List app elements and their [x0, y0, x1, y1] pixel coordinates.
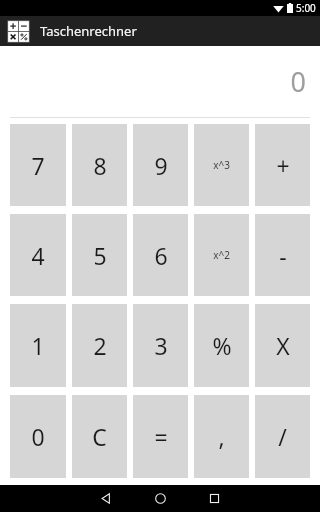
staticText: 0 — [31, 421, 45, 452]
staticText: - — [279, 240, 287, 271]
button[interactable]: 0 — [12, 46, 306, 117]
button[interactable]: 1 — [10, 304, 66, 387]
button[interactable]: = — [133, 395, 188, 478]
staticText: 9 — [154, 150, 168, 181]
button[interactable]: X — [255, 304, 310, 387]
button[interactable]: 8 — [72, 124, 127, 206]
button[interactable]: Home — [133, 485, 187, 512]
button[interactable]: - — [255, 214, 310, 296]
button[interactable]: x^2 — [194, 214, 249, 296]
staticText: X — [276, 330, 290, 361]
staticText: 2 — [93, 330, 107, 361]
staticText: , — [218, 421, 225, 452]
button[interactable]: % — [194, 304, 249, 387]
staticText: 0 — [290, 63, 306, 100]
staticText: 4 — [31, 240, 45, 271]
button[interactable]: Taschenrechner app icon — [6, 19, 30, 43]
button[interactable]: 7 — [10, 124, 66, 206]
staticText: 6 — [154, 240, 168, 271]
button[interactable]: x^3 — [194, 124, 249, 206]
button[interactable]: + — [255, 124, 310, 206]
button[interactable]: 6 — [133, 214, 188, 296]
staticText: x^3 — [213, 158, 230, 172]
button[interactable]: 4 — [10, 214, 66, 296]
staticText: 7 — [31, 150, 45, 181]
button[interactable]: 2 — [72, 304, 127, 387]
staticText: x^2 — [213, 248, 230, 262]
staticText: 1 — [31, 330, 45, 361]
button[interactable]: Back — [79, 485, 133, 512]
button[interactable]: 5 — [72, 214, 127, 296]
button[interactable]: Recent apps — [187, 485, 241, 512]
staticText: 5:00 — [296, 1, 316, 15]
staticText: = — [154, 421, 168, 452]
button[interactable]: / — [255, 395, 310, 478]
button[interactable]: 3 — [133, 304, 188, 387]
staticText: + — [276, 150, 290, 181]
staticText: 8 — [93, 150, 107, 181]
button[interactable]: 0 — [10, 395, 66, 478]
button[interactable]: , — [194, 395, 249, 478]
staticText: / — [278, 421, 287, 452]
staticText: % — [212, 330, 232, 361]
staticText: 5 — [93, 240, 107, 271]
button[interactable]: C — [72, 395, 127, 478]
staticText: Taschenrechner — [40, 22, 137, 40]
staticText: 3 — [154, 330, 168, 361]
staticText: C — [92, 421, 107, 452]
button[interactable]: 9 — [133, 124, 188, 206]
